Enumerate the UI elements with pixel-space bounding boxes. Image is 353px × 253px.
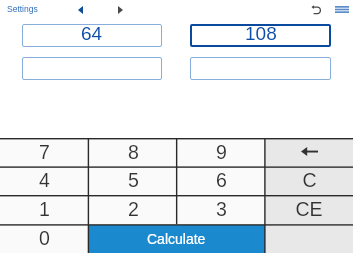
button[interactable]: Menu [334,1,350,17]
button[interactable] [265,225,353,253]
staticText: 3 [216,198,227,220]
button[interactable]: Next [112,2,128,18]
button[interactable]: 108 [190,24,331,47]
button[interactable]: 64 [22,24,162,47]
staticText: 1 [39,198,50,220]
staticText: 64 [81,23,103,44]
button[interactable]: CE [265,196,353,224]
button[interactable]: 1 [0,196,89,224]
staticText: 9 [216,141,227,163]
button[interactable] [190,57,331,80]
staticText: 5 [128,169,139,191]
button[interactable]: C [265,167,353,195]
staticText: 108 [245,23,277,44]
button[interactable] [22,57,162,80]
staticText: 8 [128,141,139,163]
staticText: Settings [7,4,38,13]
staticText: 4 [39,169,50,191]
button[interactable]: 6 [177,167,265,195]
staticText: 7 [39,141,50,163]
staticText: 0 [39,227,50,249]
button[interactable]: Undo [308,2,324,18]
button[interactable]: Settings [7,4,38,13]
staticText: 6 [216,169,227,191]
button[interactable]: 9 [177,139,265,166]
button[interactable]: 5 [89,167,177,195]
button[interactable]: Calculate [88,225,265,253]
staticText: C [302,169,317,191]
staticText: Calculate [147,231,206,247]
button[interactable]: 8 [89,139,177,166]
button[interactable]: Backspace [265,139,353,166]
button[interactable]: 4 [0,167,89,195]
button[interactable]: Previous [72,2,88,18]
button[interactable]: 3 [177,196,265,224]
staticText: CE [295,198,323,220]
button[interactable]: 0 [0,225,88,253]
staticText: 2 [128,198,139,220]
button[interactable]: 7 [0,139,89,166]
button[interactable]: 2 [89,196,177,224]
